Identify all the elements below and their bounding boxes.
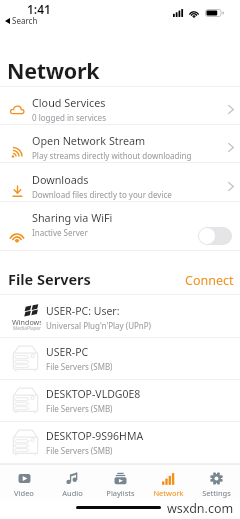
staticText: DESKTOP-VLDG0E8	[46, 387, 141, 401]
button[interactable]: Sharing via WiFi toggle	[198, 227, 232, 245]
button[interactable]: Cloud Services	[0, 94, 240, 124]
staticText: 0 logged in services	[32, 112, 106, 123]
staticText: Download files directly to your device	[32, 189, 172, 200]
staticText: DESKTOP-9S96HMA	[46, 429, 144, 443]
staticText: Windows	[12, 317, 41, 327]
staticText: Play streams directly without downloadin…	[32, 150, 192, 161]
staticText: USER-PC: User:	[46, 304, 120, 318]
staticText: File Servers (SMB)	[46, 403, 113, 414]
button[interactable]: Sharing via WiFi	[0, 209, 240, 239]
staticText: Inactive Server	[32, 227, 88, 238]
staticText: File Servers (SMB)	[46, 445, 113, 456]
button[interactable]: Audio	[48, 465, 96, 498]
button[interactable]: Open Network Stream	[0, 132, 240, 162]
staticText: Cloud Services	[32, 95, 106, 110]
staticText: Network	[7, 56, 100, 85]
button[interactable]: Network	[144, 465, 192, 498]
button[interactable]: Settings	[192, 465, 240, 498]
staticText: Sharing via WiFi	[32, 210, 113, 225]
staticText: Audio	[62, 488, 83, 498]
staticText: Network	[153, 488, 184, 498]
button[interactable]: Connect	[179, 268, 240, 290]
button[interactable]: DESKTOP-9S96HMA	[0, 421, 240, 463]
button[interactable]: DESKTOP-VLDG0E8	[0, 379, 240, 421]
staticText: USER-PC	[46, 345, 89, 359]
button[interactable]: Windows	[0, 296, 240, 338]
staticText: File Servers	[8, 269, 91, 289]
staticText: wsxdn.com	[167, 500, 234, 517]
staticText: File Servers (SMB)	[46, 361, 113, 372]
staticText: 1:41	[27, 1, 51, 17]
staticText: MediaPlayer	[13, 325, 42, 332]
staticText: Connect	[185, 272, 234, 286]
staticText: Downloads	[32, 172, 89, 187]
button[interactable]: Playlists	[96, 465, 144, 498]
staticText: Search	[12, 15, 38, 26]
button[interactable]: USER-PC	[0, 337, 240, 379]
button[interactable]: Downloads	[0, 171, 240, 201]
staticText: Settings	[202, 488, 231, 498]
staticText: Playlists	[106, 488, 135, 498]
staticText: Video	[14, 488, 34, 498]
staticText: Open Network Stream	[32, 133, 146, 148]
button[interactable]: Video	[0, 465, 48, 498]
staticText: Universal Plug'n'Play (UPnP)	[46, 320, 152, 331]
